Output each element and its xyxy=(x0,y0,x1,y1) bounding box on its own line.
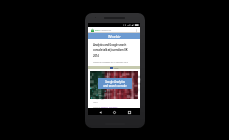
staticText: Posted in xyxy=(93,106,101,108)
staticText: Google Analytics and search console xyxy=(103,80,127,88)
button[interactable]: Home xyxy=(111,109,117,115)
staticText: ://woebir.net xyxy=(100,29,112,32)
staticText: journalism xyxy=(109,106,118,108)
staticText: Written by Someone on 10 February 2014 xyxy=(93,61,128,63)
button[interactable]: Woebir xyxy=(88,33,140,39)
staticText: Woebir xyxy=(108,34,121,39)
staticText: Analytics and Google search console talk… xyxy=(93,43,131,58)
staticText: analytics xyxy=(101,106,108,108)
staticText: Tools xyxy=(93,101,98,104)
button[interactable]: Back xyxy=(97,109,103,115)
button[interactable]: Address bar xyxy=(88,27,140,33)
staticText: Share xyxy=(114,67,119,69)
button[interactable]: Recent apps xyxy=(126,109,132,115)
staticText: https xyxy=(95,29,100,32)
